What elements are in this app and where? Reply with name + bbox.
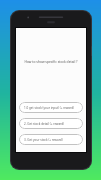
staticText: How to show specific stock detail ? bbox=[19, 59, 83, 63]
button[interactable]: 1.0 get stock (your input) (+ reward) bbox=[19, 102, 83, 113]
button[interactable]: 2. Get stock detail (+ reward) bbox=[19, 118, 83, 129]
staticText: 3. Get your stock (+ reward) bbox=[24, 138, 63, 142]
button[interactable]: 3. Get your stock (+ reward) bbox=[19, 134, 83, 145]
staticText: 2. Get stock detail (+ reward) bbox=[24, 122, 64, 126]
staticText: 1.0 get stock (your input) (+ reward) bbox=[24, 106, 74, 110]
